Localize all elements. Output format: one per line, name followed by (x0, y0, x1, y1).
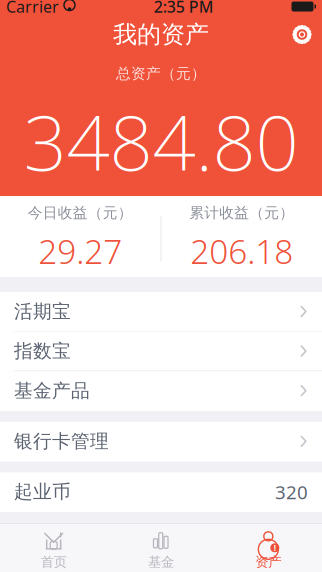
staticText: 指数宝 (14, 340, 71, 362)
staticText: 资产 (255, 554, 281, 570)
staticText: 我的资产 (113, 20, 209, 49)
staticText: 累计收益（元） (189, 204, 294, 222)
staticText: 今日收益（元） (28, 204, 133, 222)
staticText: 起业币 (14, 480, 71, 503)
staticText: Carrier (6, 0, 59, 17)
staticText: 29.27 (38, 229, 122, 273)
staticText: 基金产品 (14, 379, 90, 402)
button[interactable]: 基金产品 (0, 371, 322, 411)
button[interactable]: 指数宝 (0, 332, 322, 371)
staticText: 活期宝 (14, 300, 71, 323)
staticText: 320 (275, 479, 308, 504)
staticText: 3484.80 (23, 90, 298, 191)
staticText: 总资产（元） (116, 64, 206, 82)
button[interactable]: ! (215, 524, 322, 572)
staticText: ! (274, 542, 276, 553)
staticText: 基金 (148, 554, 174, 570)
staticText: 银行卡管理 (14, 430, 109, 453)
staticText: 206.18 (190, 229, 293, 273)
button[interactable]: 银行卡管理 (0, 422, 322, 461)
button[interactable]: 基金 (107, 524, 215, 572)
staticText: 首页 (41, 554, 67, 570)
staticText: 2:35 PM (154, 0, 214, 17)
button[interactable]: 活期宝 (0, 292, 322, 332)
button[interactable]: 首页 (0, 524, 107, 572)
button[interactable]: 设置 (282, 16, 322, 52)
button[interactable]: 起业币 (0, 472, 322, 512)
